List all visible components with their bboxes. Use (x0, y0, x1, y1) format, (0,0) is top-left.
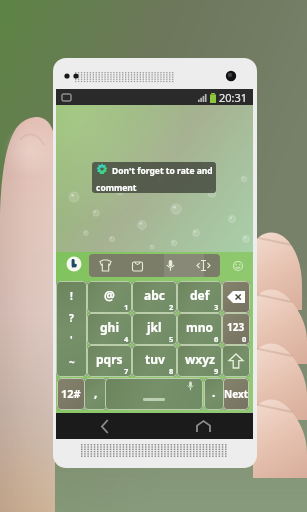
staticText: 123 (227, 320, 245, 334)
button[interactable]: Home (154, 413, 253, 439)
button[interactable]: Keyboard settings (65, 255, 82, 272)
staticText: ! (70, 289, 73, 303)
staticText: 9 (214, 366, 219, 376)
button[interactable] (105, 378, 203, 410)
staticText: 8 (169, 366, 174, 376)
button[interactable]: pqrs (87, 345, 132, 377)
staticText: tuv (145, 351, 165, 367)
button[interactable]: ghi (87, 313, 132, 345)
button[interactable]: wxyz (177, 345, 222, 377)
button[interactable]: Next (223, 378, 249, 410)
button[interactable]: Store (121, 254, 154, 277)
staticText: jkl (147, 319, 162, 335)
staticText: ~ (69, 355, 75, 369)
staticText: abc (144, 287, 165, 303)
staticText: wxyz (185, 351, 215, 367)
staticText: Next (224, 387, 249, 401)
staticText: 1 (124, 302, 129, 312)
button[interactable]: . (204, 378, 224, 410)
button[interactable]: Theme (89, 254, 121, 277)
button[interactable]: 123 (222, 313, 250, 345)
staticText: 20:31 (219, 90, 248, 105)
staticText: Don't forget to rate and (112, 165, 213, 177)
staticText: 6 (214, 334, 219, 344)
staticText: ghi (100, 319, 119, 335)
button[interactable] (222, 281, 250, 313)
button[interactable]: abc (132, 281, 177, 313)
staticText: 12# (61, 386, 81, 401)
button[interactable]: mno (177, 313, 222, 345)
staticText: comment (96, 182, 137, 193)
button[interactable]: Back (56, 413, 154, 439)
button[interactable]: , (84, 378, 107, 410)
button[interactable]: Emoji (222, 254, 253, 277)
button[interactable]: @ (87, 281, 132, 313)
button[interactable]: Cursor (187, 254, 220, 277)
button[interactable] (222, 345, 250, 377)
staticText: 5 (169, 334, 174, 344)
button[interactable]: tuv (132, 345, 177, 377)
staticText: def (190, 287, 210, 303)
staticText: mno (186, 319, 214, 335)
staticText: ? (69, 311, 74, 325)
button[interactable]: ! (56, 281, 87, 377)
button[interactable]: jkl (132, 313, 177, 345)
button[interactable]: 12# (57, 378, 85, 410)
staticText: @ (104, 287, 115, 303)
staticText: . (212, 384, 216, 400)
staticText: 3 (214, 302, 219, 312)
staticText: 0 (242, 334, 247, 344)
staticText: 4 (124, 334, 129, 344)
staticText: 7 (124, 366, 129, 376)
button[interactable]: Voice input (154, 254, 187, 277)
staticText: ' (70, 333, 73, 347)
staticText: pqrs (96, 351, 123, 367)
button[interactable]: def (177, 281, 222, 313)
button[interactable]: Don't forget to rate and (92, 162, 216, 193)
staticText: 2 (169, 302, 174, 312)
staticText: , (94, 384, 98, 400)
